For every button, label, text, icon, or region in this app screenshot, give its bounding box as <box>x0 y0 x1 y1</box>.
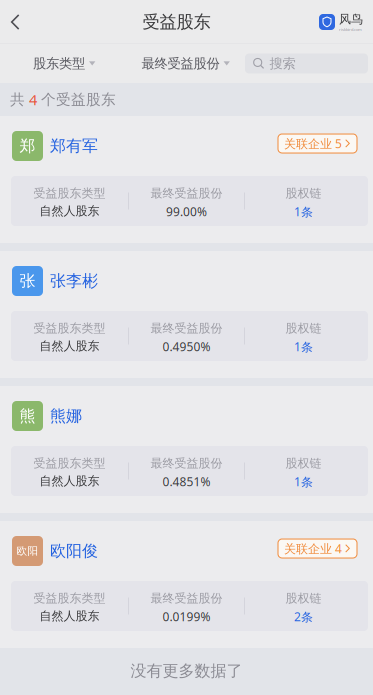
staticText: 自然人股东 <box>39 204 99 218</box>
staticText: 0.4851% <box>162 474 210 490</box>
staticText: 没有更多数据了 <box>130 661 242 681</box>
staticText: 最终受益股份 <box>150 186 222 201</box>
staticText: 欧阳 <box>16 544 38 557</box>
button[interactable]: 关联企业 4 <box>278 539 357 558</box>
staticText: 受益股东 <box>142 11 210 33</box>
staticText: 2条 <box>294 609 313 625</box>
button[interactable]: 搜索 <box>245 53 368 73</box>
staticText: 股权链 <box>285 186 321 201</box>
staticText: 1条 <box>294 204 313 220</box>
staticText: 自然人股东 <box>39 339 99 353</box>
staticText: riskbird.com <box>339 27 362 32</box>
button[interactable]: Back <box>0 0 30 44</box>
staticText: 最终受益股份 <box>150 321 222 336</box>
staticText: 99.00% <box>166 204 207 220</box>
staticText: 张李彬 <box>50 271 98 291</box>
staticText: 搜索 <box>269 55 295 72</box>
button[interactable]: 股东类型 <box>0 44 108 83</box>
button[interactable]: 张 <box>0 251 373 378</box>
staticText: 受益股东类型 <box>33 456 105 471</box>
staticText: 郑有军 <box>50 136 98 156</box>
staticText: 1条 <box>294 339 313 355</box>
staticText: 0.0199% <box>162 609 210 625</box>
button[interactable]: riskbird <box>319 0 373 44</box>
staticText: 最终受益股份 <box>150 591 222 606</box>
staticText: 自然人股东 <box>39 474 99 488</box>
staticText: 欧阳俊 <box>50 541 98 561</box>
staticText: 最终受益股份 <box>150 456 222 471</box>
staticText: 熊 <box>19 406 35 426</box>
staticText: 股东类型 <box>33 55 85 72</box>
staticText: 受益股东类型 <box>33 591 105 606</box>
staticText: 关联企业 5 <box>284 135 342 151</box>
button[interactable]: 最终受益股份 <box>115 44 237 83</box>
staticText: 0.4950% <box>162 339 210 355</box>
staticText: 风鸟 <box>339 12 363 27</box>
staticText: 自然人股东 <box>39 609 99 623</box>
staticText: 个受益股东 <box>37 90 116 108</box>
staticText: 熊娜 <box>50 406 82 426</box>
button[interactable]: 熊 <box>0 386 373 513</box>
staticText: 最终受益股份 <box>141 55 219 72</box>
button[interactable]: 欧阳 <box>0 521 373 648</box>
button[interactable]: 郑 <box>0 116 373 243</box>
staticText: 张 <box>19 271 35 291</box>
staticText: 1条 <box>294 474 313 490</box>
staticText: 关联企业 4 <box>284 540 342 556</box>
staticText: 共 <box>10 90 29 108</box>
button[interactable]: 关联企业 5 <box>278 134 357 153</box>
staticText: 股权链 <box>285 591 321 606</box>
staticText: 受益股东类型 <box>33 186 105 201</box>
staticText: 受益股东类型 <box>33 321 105 336</box>
staticText: 股权链 <box>285 456 321 471</box>
staticText: 郑 <box>19 136 35 156</box>
staticText: 股权链 <box>285 321 321 336</box>
staticText: 4 <box>29 90 37 109</box>
